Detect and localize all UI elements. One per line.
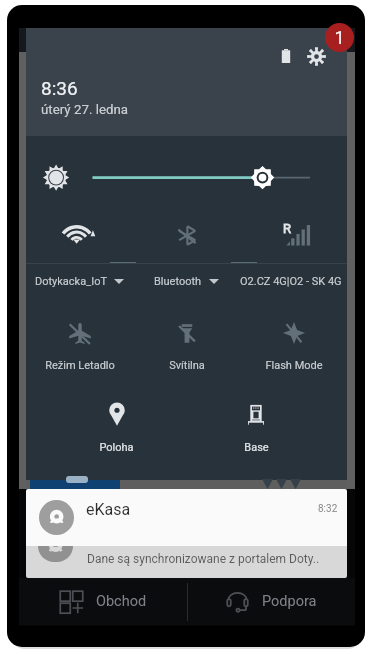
button[interactable]: 1 notification: [325, 23, 354, 52]
staticText: Dane są synchronizowane z portalem Doty.…: [87, 552, 320, 566]
staticText: Režim Letadlo: [45, 359, 115, 372]
button[interactable]: O2.CZ 4G|O2 - SK 4G: [240, 269, 347, 293]
staticText: eKasa: [86, 500, 131, 519]
staticText: Poloha: [99, 441, 134, 454]
staticText: 8:36: [41, 77, 78, 99]
button[interactable]: eKasa: [26, 489, 347, 546]
button[interactable]: Dane są synchronizowane z portalem Doty.…: [26, 546, 347, 578]
staticText: 1: [334, 27, 345, 48]
button[interactable]: Dotykacka_IoT: [26, 269, 133, 293]
button[interactable]: Brightness: [26, 156, 347, 199]
staticText: Base: [244, 441, 269, 454]
button[interactable]: Režim Letadlo: [26, 322, 133, 374]
staticText: R: [283, 221, 292, 236]
staticText: Dotykacka_IoT: [35, 275, 107, 288]
staticText: Svítilna: [169, 359, 205, 372]
button[interactable]: Bluetooth: [133, 269, 240, 293]
staticText: Flash Mode: [265, 359, 323, 372]
button[interactable]: Flash Mode: [240, 322, 347, 374]
button[interactable]: Bluetooth off: [133, 206, 240, 264]
button[interactable]: Wi-Fi: [26, 206, 133, 264]
staticText: Obchod: [96, 593, 147, 610]
button[interactable]: Svítilna: [133, 322, 240, 374]
staticText: 8:32: [318, 503, 338, 515]
button[interactable]: Battery: [281, 49, 291, 63]
button[interactable]: Settings: [307, 47, 326, 66]
button[interactable]: Obchod: [19, 578, 187, 625]
button[interactable]: Mobile signal: [240, 206, 347, 264]
button[interactable]: Podpora: [187, 578, 355, 625]
staticText: úterý 27. ledna: [41, 102, 129, 118]
staticText: Bluetooth: [154, 275, 202, 288]
button[interactable]: Base: [186, 404, 326, 456]
button[interactable]: Poloha: [47, 404, 186, 456]
staticText: O2.CZ 4G|O2 - SK 4G: [240, 275, 342, 288]
staticText: Podpora: [262, 593, 317, 610]
